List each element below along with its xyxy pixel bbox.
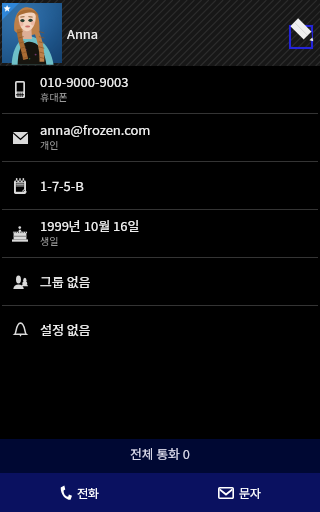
button[interactable]: anna@frozen.com [0,114,320,161]
staticText: 생일 [40,233,59,247]
staticText: 전화 [77,484,100,501]
button[interactable]: 문자 [160,473,320,512]
staticText: anna@frozen.com [40,120,151,139]
staticText: 1999년 10월 16일 [40,216,140,235]
staticText: 설정 없음 [40,320,91,339]
staticText: 개인 [40,137,59,151]
button[interactable]: 전화 [0,473,160,512]
button[interactable]: 설정 없음 [0,306,320,353]
staticText: 그룹 없음 [40,272,91,291]
staticText: 010-9000-9003 [40,72,129,91]
staticText: 문자 [239,484,262,501]
staticText: 전체 통화 0 [130,444,190,463]
button[interactable]: 그룹 없음 [0,258,320,305]
staticText: Anna [67,24,99,43]
button[interactable]: 1999년 10월 16일 [0,210,320,257]
staticText: 1-7-5-B [40,176,84,195]
button[interactable]: 010-9000-9003 [0,66,320,113]
button[interactable]: 1-7-5-B [0,162,320,209]
staticText: 휴대폰 [40,89,68,103]
button[interactable]: Edit [276,11,320,55]
